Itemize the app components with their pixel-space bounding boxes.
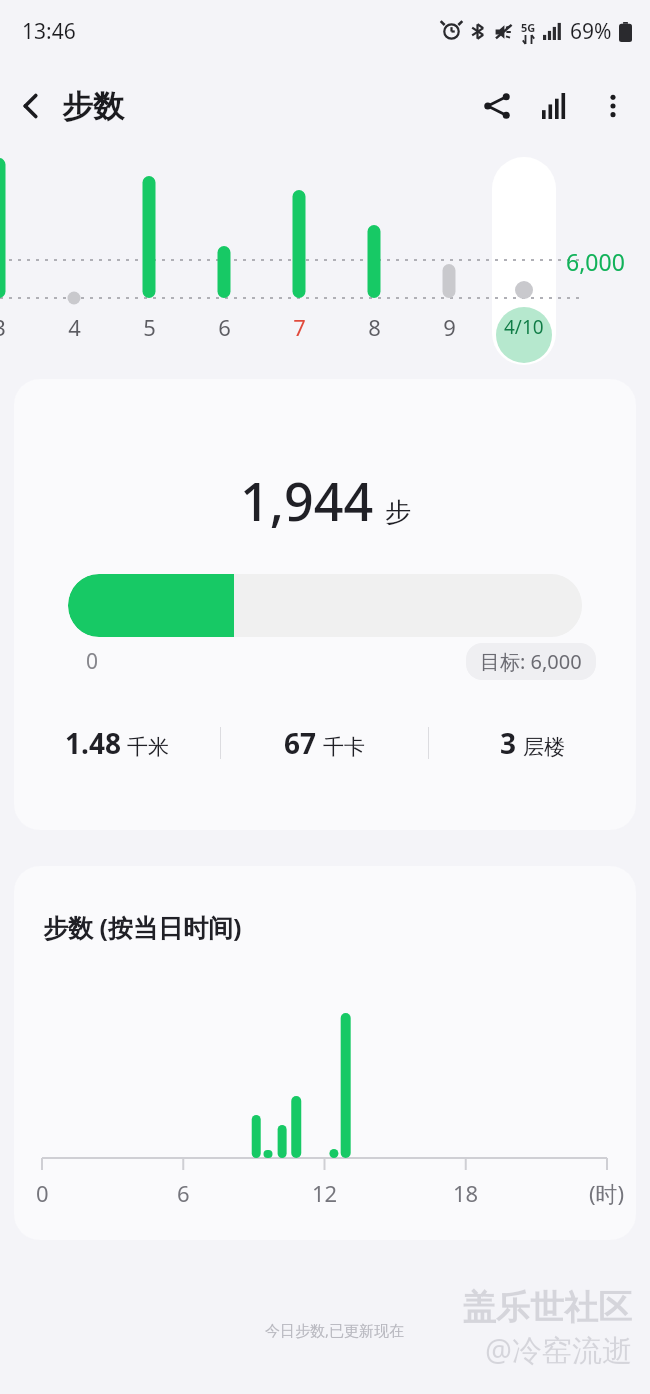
staticText: 6,000 — [566, 246, 625, 277]
staticText: 6 — [177, 1178, 190, 1208]
staticText: 1,944 — [240, 465, 374, 536]
staticText: 目标: 6,000 — [480, 648, 582, 675]
staticText: @冷窑流逝 — [485, 1329, 632, 1370]
button[interactable]: 0 — [14, 968, 636, 1228]
staticText: 18 — [453, 1178, 479, 1208]
staticText: 5G — [521, 20, 536, 35]
staticText: 0 — [86, 647, 99, 676]
staticText: 4 — [68, 312, 81, 342]
staticText: 3 — [500, 724, 517, 762]
staticText: 4/10 — [504, 314, 544, 340]
staticText: 千卡 — [323, 734, 365, 760]
button[interactable]: 8 — [344, 310, 404, 344]
button[interactable]: 7 — [269, 310, 329, 344]
button[interactable]: 1.48 — [14, 724, 220, 762]
staticText: 层楼 — [523, 734, 565, 760]
staticText: 5 — [143, 312, 156, 342]
staticText: 步 — [385, 496, 411, 529]
staticText: 9 — [443, 312, 456, 342]
button[interactable]: Share — [468, 77, 526, 135]
staticText: 0 — [36, 1178, 49, 1208]
button[interactable]: 67 — [221, 724, 428, 762]
staticText: 69% — [570, 17, 612, 46]
staticText: 3 — [0, 312, 6, 342]
staticText: 盖乐世社区 — [462, 1286, 632, 1329]
staticText: 13:46 — [22, 17, 76, 46]
button[interactable]: 6 — [194, 310, 254, 344]
staticText: 12 — [312, 1178, 338, 1208]
button[interactable]: 5 — [119, 310, 179, 344]
staticText: 今日步数,已更新现在 — [265, 1320, 405, 1340]
button[interactable]: 9 — [419, 310, 479, 344]
staticText: 67 — [284, 724, 317, 762]
staticText: 1.48 — [65, 724, 121, 762]
staticText: (时) — [589, 1178, 625, 1208]
button[interactable]: 4 — [44, 310, 104, 344]
staticText: 6 — [218, 312, 231, 342]
button[interactable]: Chart — [526, 77, 584, 135]
button[interactable]: 3 — [0, 310, 29, 344]
button[interactable]: 3 — [429, 724, 636, 762]
staticText: 步数 (按当日时间) — [43, 910, 242, 944]
button[interactable]: More options — [584, 77, 642, 135]
button[interactable]: Back — [0, 75, 62, 137]
button[interactable] — [68, 574, 582, 637]
staticText: 步数 — [62, 87, 124, 126]
staticText: 千米 — [127, 734, 169, 760]
staticText: 8 — [368, 312, 381, 342]
staticText: 7 — [293, 312, 306, 342]
